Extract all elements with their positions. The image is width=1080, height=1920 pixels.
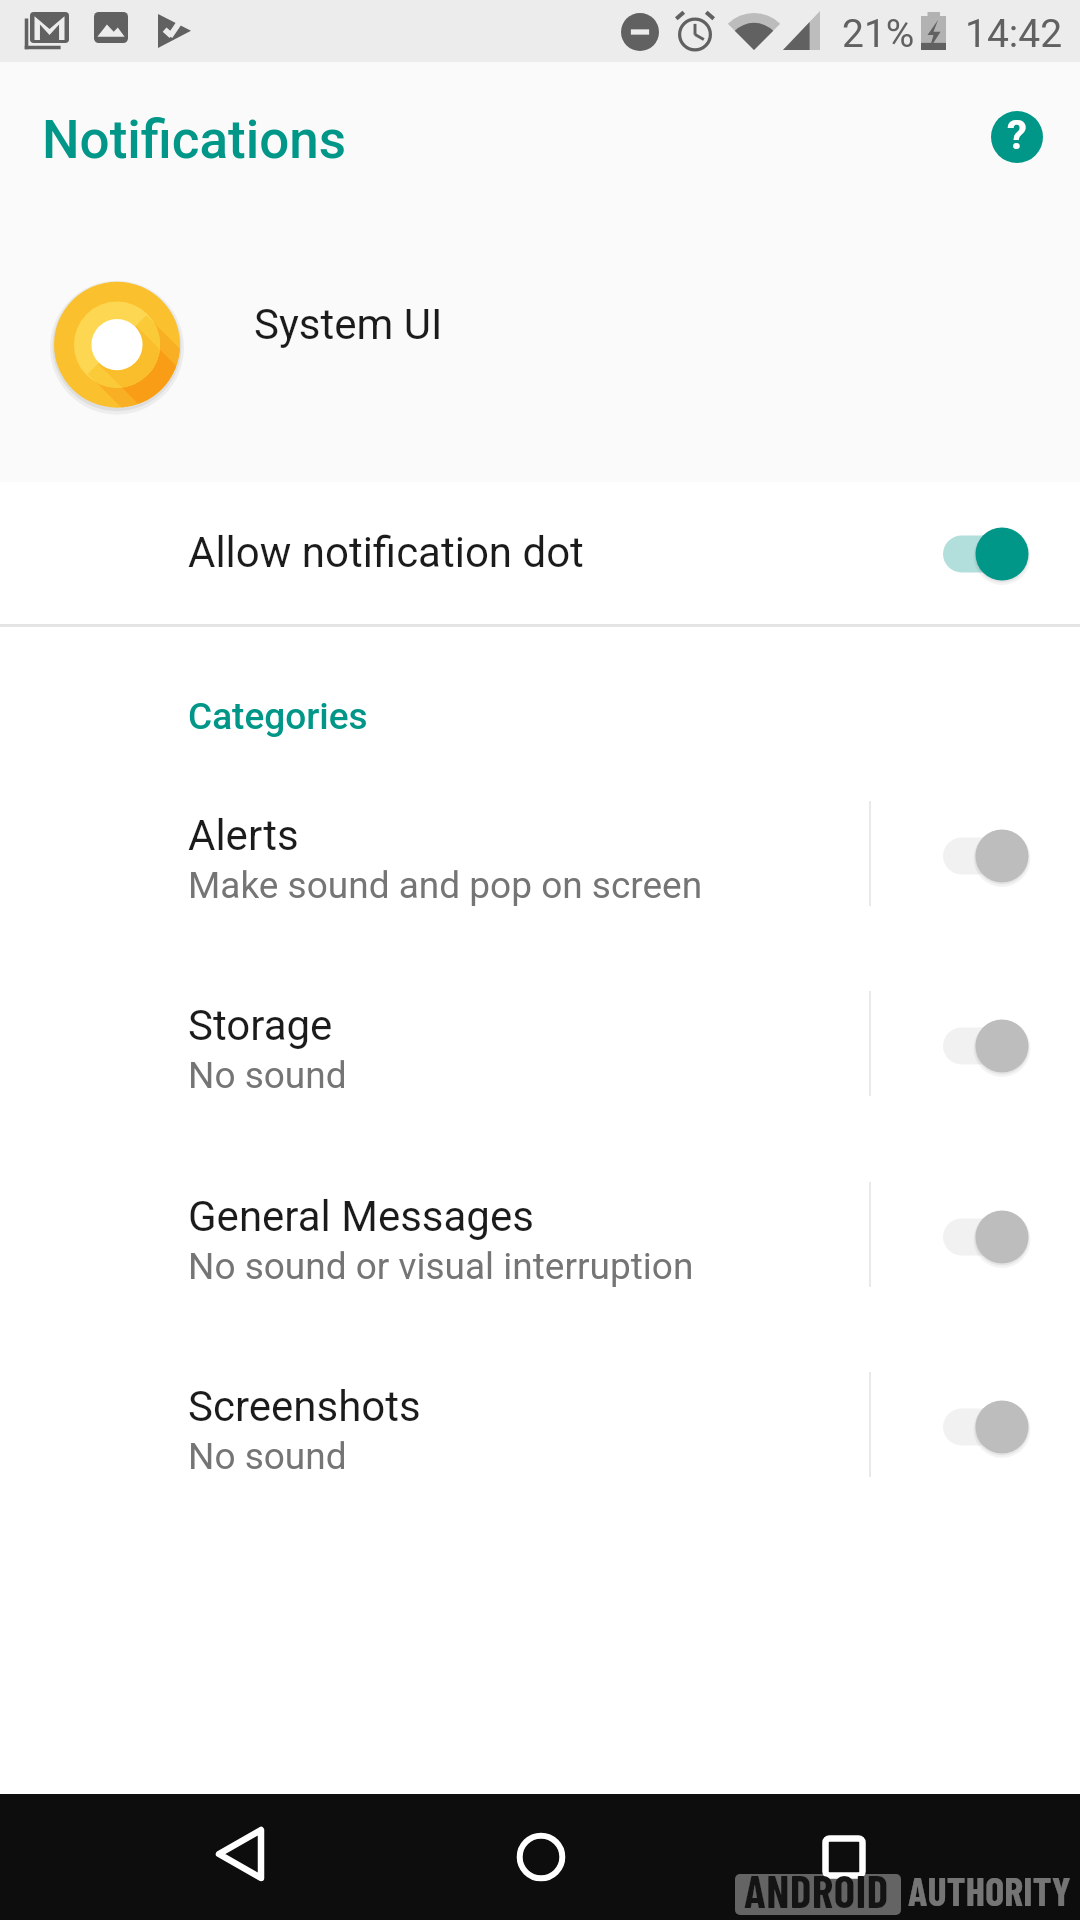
- staticText: Allow notification dot: [188, 528, 584, 577]
- staticText: System UI: [254, 300, 443, 349]
- button[interactable]: Storage switch: [900, 985, 1080, 1107]
- button[interactable]: Recent apps: [814, 1827, 874, 1887]
- button[interactable]: Back: [206, 1823, 268, 1885]
- staticText: AUTHORITY: [908, 1866, 1071, 1914]
- staticText: 14:42: [965, 11, 1063, 57]
- button[interactable]: Screenshots: [0, 1376, 1080, 1516]
- button[interactable]: Screenshots switch: [900, 1366, 1080, 1488]
- staticText: ?: [1007, 112, 1027, 159]
- staticText: 21%: [842, 11, 915, 57]
- staticText: No sound: [188, 1054, 347, 1097]
- staticText: No sound or visual interruption: [188, 1245, 694, 1288]
- button[interactable]: General Messages switch: [900, 1176, 1080, 1298]
- staticText: Categories: [188, 695, 368, 738]
- button[interactable]: Storage: [0, 995, 1080, 1135]
- staticText: Alerts: [188, 811, 299, 860]
- button[interactable]: Allow notification dot: [0, 482, 1080, 624]
- staticText: Screenshots: [188, 1382, 421, 1431]
- staticText: No sound: [188, 1435, 347, 1478]
- button[interactable]: Alerts switch: [900, 795, 1080, 917]
- staticText: Storage: [188, 1001, 333, 1050]
- staticText: ANDROID: [744, 1863, 889, 1917]
- staticText: Notifications: [42, 109, 347, 171]
- button[interactable]: Help: [977, 97, 1057, 177]
- staticText: Make sound and pop on screen: [188, 864, 703, 907]
- staticText: General Messages: [188, 1192, 534, 1241]
- button[interactable]: Alerts: [0, 805, 1080, 945]
- button[interactable]: Home: [511, 1827, 571, 1887]
- button[interactable]: General Messages: [0, 1186, 1080, 1326]
